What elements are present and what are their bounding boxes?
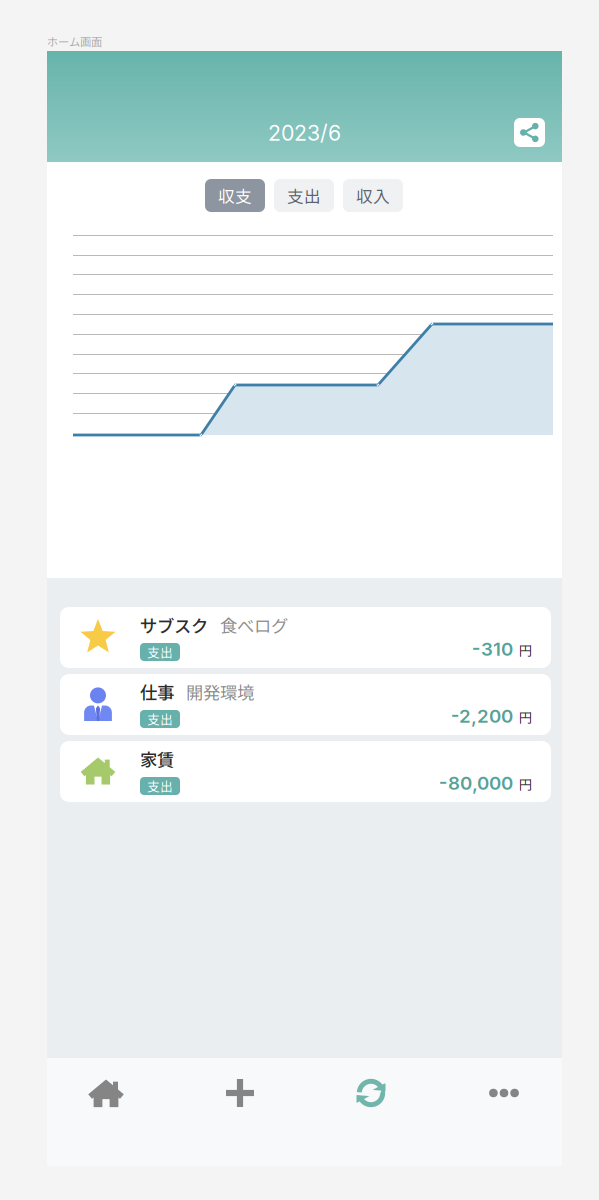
button[interactable]: Sync — [311, 1055, 431, 1131]
button[interactable]: More — [444, 1055, 564, 1131]
staticText: -2,200 — [451, 705, 513, 727]
staticText: 2023/6 — [268, 120, 341, 146]
staticText: -310 — [472, 638, 513, 660]
staticText: 家賃 — [140, 746, 174, 772]
staticText: 支出 — [287, 183, 321, 207]
staticText: 収支 — [218, 183, 252, 207]
button[interactable]: 仕事 — [60, 674, 551, 735]
button[interactable]: 家賃 — [60, 741, 551, 802]
button[interactable]: 収入 — [343, 179, 403, 212]
staticText: 仕事 — [140, 679, 174, 705]
staticText: ホーム画面 — [47, 33, 102, 49]
staticText: -80,000 — [439, 772, 513, 794]
button[interactable]: 収支 — [205, 179, 265, 212]
staticText: 円 — [519, 640, 532, 660]
staticText: 支出 — [147, 710, 173, 728]
button[interactable]: Share — [514, 118, 545, 147]
button[interactable]: 支出 — [274, 179, 334, 212]
staticText: 円 — [519, 707, 532, 727]
button[interactable]: Add — [180, 1055, 300, 1131]
staticText: 支出 — [147, 777, 173, 795]
staticText: サブスク — [140, 612, 208, 638]
staticText: 開発環境 — [186, 679, 254, 705]
staticText: 円 — [519, 774, 532, 794]
staticText: 支出 — [147, 643, 173, 661]
staticText: 収入 — [356, 183, 390, 207]
button[interactable]: Home — [46, 1055, 166, 1131]
staticText: 食べログ — [220, 612, 288, 638]
button[interactable]: サブスク — [60, 607, 551, 668]
